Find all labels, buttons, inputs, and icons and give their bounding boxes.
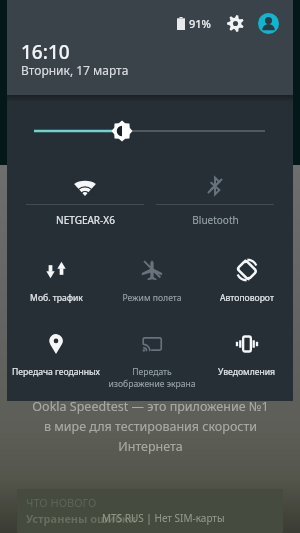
staticText: NETGEAR-X6 <box>56 213 115 227</box>
button[interactable]: Settings <box>224 12 246 34</box>
button[interactable]: ЧТО НОВОГО <box>17 489 283 533</box>
button[interactable]: Режим полета <box>104 248 199 316</box>
staticText: MTS RUS | Нет SIM-карты <box>102 511 225 525</box>
staticText: Моб. трафик <box>30 292 83 304</box>
staticText: Автоповорот <box>220 292 274 304</box>
staticText: Передача геоданных <box>12 366 100 378</box>
button[interactable]: Передача геоданных <box>8 322 104 394</box>
staticText: 91% <box>189 16 211 31</box>
staticText: Передать изображение экрана <box>108 366 196 390</box>
staticText: Устранены ошибки <box>26 511 137 526</box>
staticText: Вторник, 17 марта <box>21 62 129 78</box>
button[interactable]: Моб. трафик <box>8 248 104 316</box>
staticText: Режим полета <box>122 292 182 304</box>
staticText: 16:10 <box>21 39 70 65</box>
staticText: ЧТО НОВОГО <box>26 495 97 510</box>
button[interactable]: User profile <box>258 13 279 34</box>
button[interactable]: Автоповорот <box>199 248 294 316</box>
button[interactable]: Передать изображение экрана <box>104 322 199 394</box>
button[interactable]: Bluetooth <box>150 160 280 238</box>
staticText: Bluetooth <box>192 213 239 227</box>
button[interactable]: NETGEAR-X6 <box>20 160 150 238</box>
staticText: Ookla Speedtest — это приложение №1 в ми… <box>32 398 269 455</box>
staticText: Уведомления <box>218 366 275 378</box>
button[interactable]: Уведомления <box>199 322 294 394</box>
